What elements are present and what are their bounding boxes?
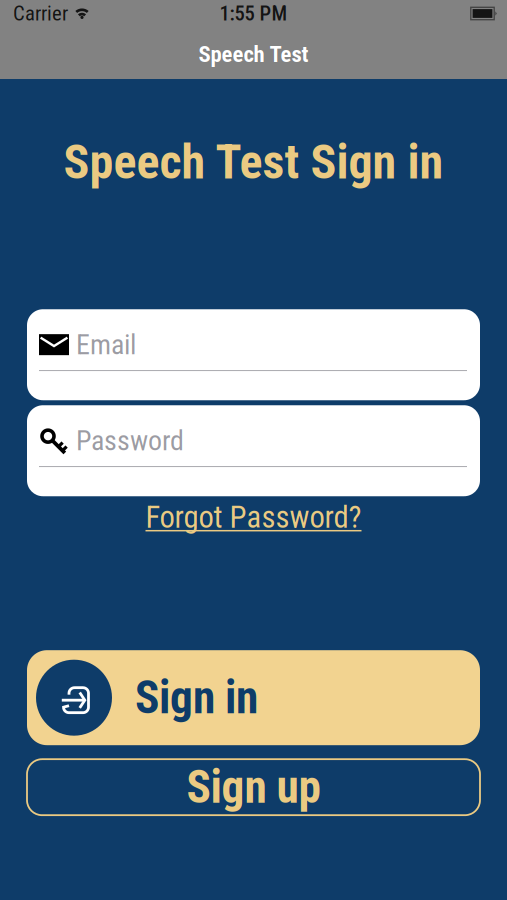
button[interactable]: Sign up (27, 759, 480, 815)
button[interactable]: Sign in (27, 650, 480, 745)
staticText: Carrier (13, 1, 68, 26)
staticText: Email (76, 328, 136, 361)
button[interactable]: Email (27, 309, 480, 400)
staticText: Password (76, 424, 184, 457)
button[interactable]: Forgot Password? (145, 499, 361, 535)
staticText: Speech Test Sign in (63, 134, 443, 190)
staticText: Forgot Password? (145, 499, 361, 535)
staticText: 1:55 PM (219, 1, 287, 26)
button[interactable]: Password (27, 405, 480, 496)
staticText: Sign in (135, 671, 258, 724)
staticText: Speech Test (198, 41, 308, 68)
staticText: Sign up (186, 761, 320, 814)
